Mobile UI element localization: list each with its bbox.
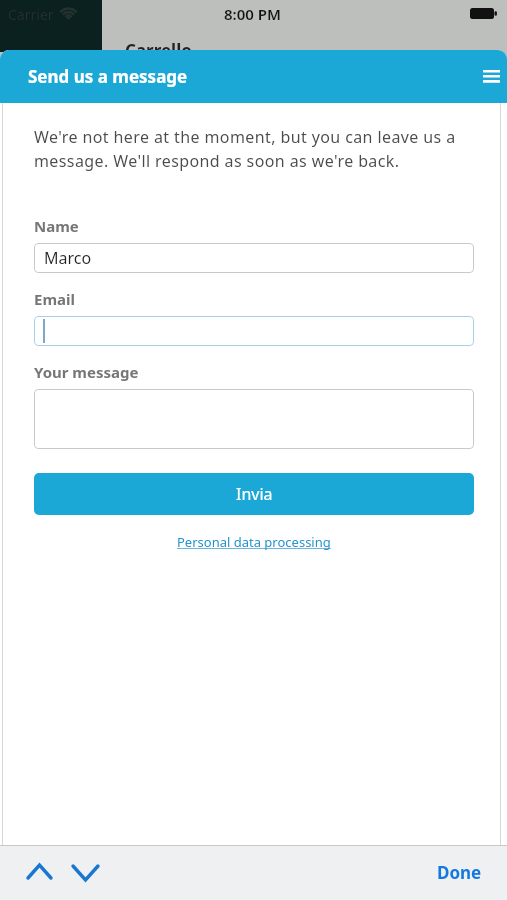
staticText: 8:00 PM bbox=[224, 4, 281, 24]
button[interactable]: Marco bbox=[34, 243, 474, 273]
button[interactable]: Invia bbox=[34, 473, 474, 515]
button[interactable] bbox=[34, 389, 474, 449]
staticText: Email bbox=[34, 289, 75, 309]
button[interactable]: Personal data processing bbox=[177, 533, 331, 551]
button[interactable]: Done bbox=[437, 861, 482, 884]
staticText: Carrello bbox=[125, 39, 192, 62]
button[interactable] bbox=[73, 866, 98, 880]
button[interactable] bbox=[34, 316, 474, 346]
staticText: Carrier bbox=[8, 5, 54, 24]
button[interactable]: Send us a message bbox=[0, 50, 507, 103]
button[interactable] bbox=[28, 865, 51, 878]
staticText: We're not here at the moment, but you ca… bbox=[34, 126, 474, 172]
staticText: Your message bbox=[34, 362, 139, 382]
staticText: Send us a message bbox=[28, 65, 483, 88]
staticText: Marco bbox=[44, 247, 92, 269]
staticText: Name bbox=[34, 216, 79, 236]
button[interactable] bbox=[483, 70, 500, 83]
staticText: Invia bbox=[236, 483, 273, 505]
